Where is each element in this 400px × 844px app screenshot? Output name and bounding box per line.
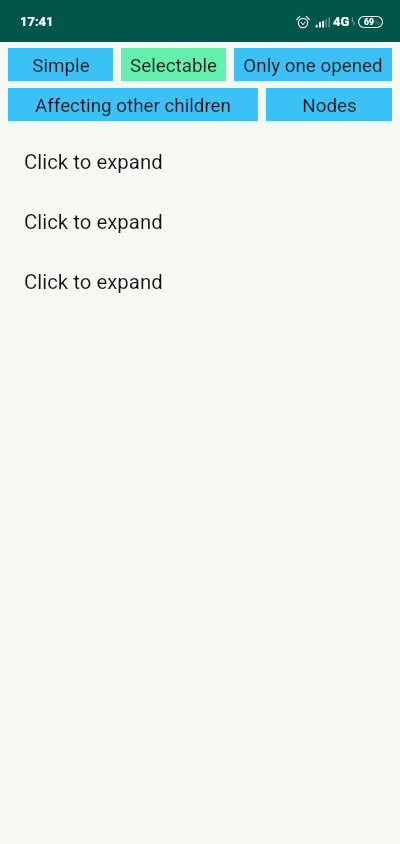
staticText: Click to expand [24, 150, 163, 174]
staticText: Selectable [130, 55, 217, 77]
staticText: 69 [364, 17, 374, 27]
button[interactable]: Only one opened [234, 48, 392, 81]
other: Signal strength [315, 15, 331, 28]
staticText: Nodes [302, 95, 357, 117]
staticText: Simple [32, 55, 90, 77]
other: Alarm [296, 15, 310, 29]
button[interactable]: Click to expand [0, 252, 400, 312]
staticText: 4G [333, 14, 350, 29]
staticText: Only one opened [243, 55, 383, 77]
button[interactable]: Selectable [121, 48, 226, 81]
staticText: Click to expand [24, 270, 163, 294]
button[interactable]: Simple [8, 48, 113, 81]
button[interactable]: Affecting other children [8, 88, 258, 121]
staticText: Click to expand [24, 210, 163, 234]
staticText: 17:41 [20, 14, 54, 29]
button[interactable]: Click to expand [0, 132, 400, 192]
button[interactable]: Click to expand [0, 192, 400, 252]
other: Battery 69 percent [358, 16, 383, 28]
staticText: % [374, 18, 380, 27]
button[interactable]: Nodes [266, 88, 392, 121]
staticText: Affecting other children [35, 95, 231, 117]
